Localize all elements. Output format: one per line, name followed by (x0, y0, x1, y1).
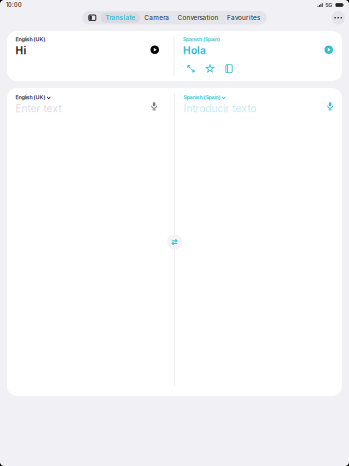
staticText: Translate (105, 14, 135, 22)
button[interactable]: English (UK) (15, 94, 50, 100)
staticText: Hi (15, 44, 26, 57)
button[interactable]: Add to favourites (201, 65, 219, 73)
button[interactable]: Dictionary (220, 65, 238, 73)
staticText: Conversation (178, 14, 219, 22)
button[interactable]: Spanish (Spain) (183, 94, 225, 100)
staticText: 5G (325, 2, 332, 8)
staticText: Camera (144, 14, 169, 22)
staticText: Spanish (Spain) (183, 94, 220, 100)
staticText: Hola (183, 44, 206, 57)
staticText: English (UK) (15, 94, 45, 100)
button[interactable]: Translate (101, 12, 140, 23)
button[interactable]: More (331, 11, 345, 24)
staticText: Spanish (Spain) (183, 36, 220, 42)
staticText: Favourites (227, 14, 260, 22)
button[interactable]: Show Sidebar (85, 12, 100, 23)
button[interactable]: Full screen (182, 65, 200, 73)
button[interactable]: Conversation (173, 12, 223, 23)
staticText: Enter text (15, 102, 61, 115)
staticText: 10:00 (6, 2, 22, 8)
button[interactable]: Camera (140, 12, 173, 23)
button[interactable]: Swap languages (167, 234, 182, 249)
button[interactable]: Favourites (223, 12, 264, 23)
staticText: English (UK) (15, 36, 45, 42)
staticText: Introducir texto (183, 102, 256, 115)
